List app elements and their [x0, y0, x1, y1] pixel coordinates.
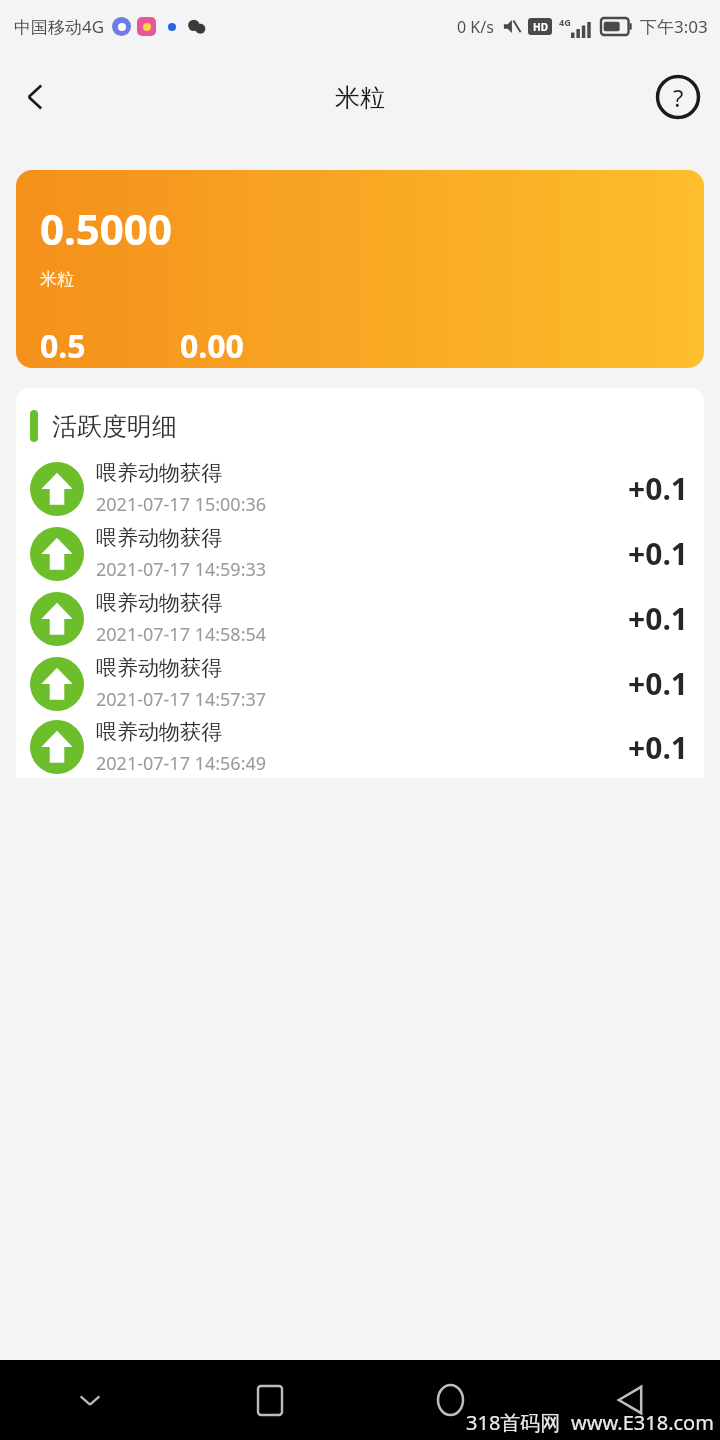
- button[interactable]: Back: [8, 69, 64, 125]
- button[interactable]: 喂养动物获得: [16, 651, 704, 716]
- staticText: +0.1: [628, 727, 688, 768]
- staticText: 318首码网: [466, 1409, 561, 1436]
- staticText: +0.1: [628, 468, 688, 509]
- button[interactable]: Hide keyboard: [0, 1360, 180, 1440]
- staticText: HD: [533, 20, 548, 34]
- staticText: 米粒: [335, 82, 385, 113]
- staticText: 喂养动物获得: [96, 460, 222, 486]
- button[interactable]: 0.5000: [16, 170, 704, 368]
- staticText: 0.5: [40, 324, 86, 368]
- staticText: 2021-07-17 14:59:33: [96, 557, 267, 582]
- staticText: +0.1: [628, 663, 688, 704]
- staticText: 2021-07-17 14:58:54: [96, 622, 267, 647]
- staticText: www.E318.com: [571, 1409, 714, 1436]
- staticText: 2021-07-17 14:56:49: [96, 751, 267, 776]
- staticText: 喂养动物获得: [96, 655, 222, 681]
- button[interactable]: 喂养动物获得: [16, 456, 704, 521]
- button[interactable]: Help: [650, 69, 706, 125]
- button[interactable]: Recent apps: [180, 1360, 360, 1440]
- staticText: 中国移动4G: [14, 15, 105, 38]
- staticText: +0.1: [628, 598, 688, 639]
- staticText: 米粒: [40, 269, 74, 290]
- staticText: 0 K/s: [457, 16, 494, 38]
- button[interactable]: 喂养动物获得: [16, 521, 704, 586]
- staticText: 喂养动物获得: [96, 719, 222, 745]
- staticText: 0.5000: [40, 200, 172, 257]
- staticText: ?: [673, 81, 684, 114]
- staticText: 活跃度明细: [52, 411, 177, 442]
- staticText: 2021-07-17 14:57:37: [96, 687, 267, 712]
- staticText: 0.00: [180, 324, 244, 368]
- staticText: 4G: [559, 16, 571, 28]
- button[interactable]: 喂养动物获得: [16, 586, 704, 651]
- staticText: 下午3:03: [640, 15, 708, 38]
- button[interactable]: 喂养动物获得: [16, 716, 704, 778]
- staticText: +0.1: [628, 533, 688, 574]
- staticText: 2021-07-17 15:00:36: [96, 492, 267, 517]
- button[interactable]: Back: [540, 1360, 720, 1440]
- staticText: 喂养动物获得: [96, 590, 222, 616]
- staticText: 喂养动物获得: [96, 525, 222, 551]
- button[interactable]: Home: [360, 1360, 540, 1440]
